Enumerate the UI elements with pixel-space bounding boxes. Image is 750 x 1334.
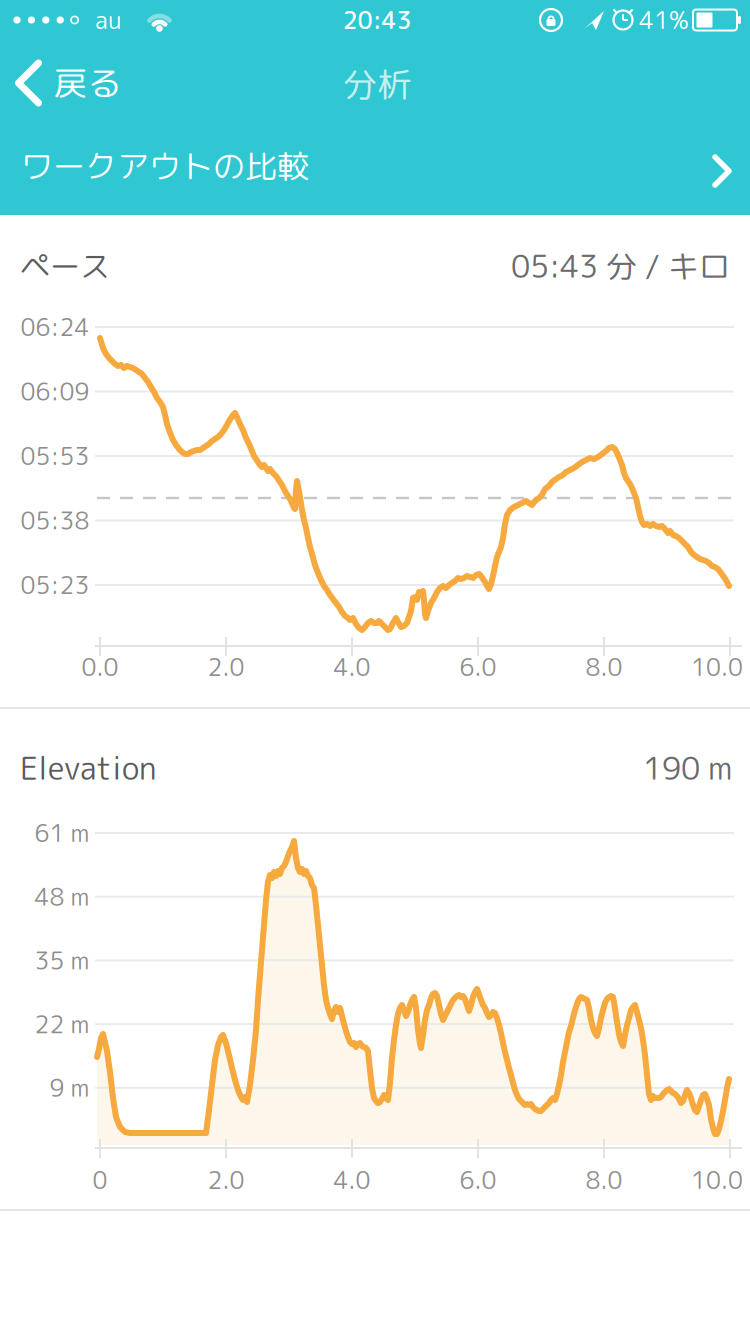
staticText: 2.0 [207,1163,244,1197]
staticText: 4.0 [333,650,370,684]
staticText: ペース [20,245,110,287]
staticText: 05:38 [20,504,89,537]
staticText: 190 m [643,746,732,790]
staticText: 41% [639,3,689,37]
staticText: 20:43 [342,3,411,37]
staticText: 10.0 [691,1163,743,1197]
staticText: ワークアウトの比較 [21,144,309,188]
staticText: Elevation [20,746,157,790]
staticText: 4.0 [333,1163,370,1197]
staticText: 6.0 [459,650,496,684]
staticText: 48 m [34,880,89,913]
staticText: 8.0 [585,650,622,684]
staticText: 戻る [53,59,121,107]
staticText: 35 m [34,944,89,977]
staticText: 06:09 [20,375,89,408]
staticText: 0 [92,1163,107,1197]
button[interactable]: ワークアウトの比較 [0,120,750,215]
staticText: 0.0 [81,650,118,684]
staticText: 61 m [34,816,89,850]
staticText: 05:23 [20,568,89,602]
button[interactable]: 戻る [16,59,121,107]
staticText: au [95,3,121,37]
staticText: 05:53 [20,439,89,473]
staticText: 05:43 分 / キロ [511,244,730,288]
staticText: 分析 [343,60,411,108]
staticText: 2.0 [207,650,244,684]
staticText: 10.0 [691,650,743,684]
staticText: 9 m [49,1071,89,1105]
staticText: 06:24 [20,310,89,344]
staticText: 8.0 [585,1163,622,1197]
staticText: 6.0 [459,1163,496,1197]
staticText: 22 m [34,1007,89,1041]
